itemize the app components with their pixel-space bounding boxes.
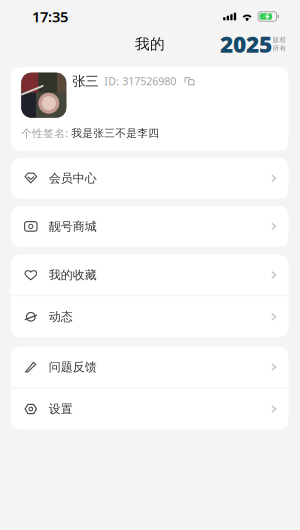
staticText: 张三 (72, 73, 98, 89)
staticText: 所有 (272, 44, 286, 52)
button[interactable]: 动态 (11, 296, 288, 337)
staticText: 设置 (49, 402, 73, 416)
staticText: 我的 (135, 35, 165, 53)
staticText: 问题反馈 (49, 360, 97, 374)
staticText: 我的收藏 (49, 267, 97, 282)
button[interactable]: 设置 (11, 388, 288, 429)
button[interactable]: 会员中心 (11, 158, 288, 199)
button[interactable]: 问题反馈 (11, 347, 288, 388)
staticText: 个性签名: (21, 126, 71, 140)
button[interactable]: 复制 ID (184, 76, 195, 86)
staticText: 我是张三不是李四 (71, 127, 159, 140)
button[interactable]: 我的收藏 (11, 254, 288, 295)
staticText: 会员中心 (49, 171, 97, 185)
staticText: ID: 317526980 (104, 74, 176, 88)
button[interactable]: 靓号商城 (11, 206, 288, 247)
staticText: 动态 (49, 309, 73, 324)
staticText: 靓号商城 (49, 219, 97, 234)
staticText: 17:35 (32, 7, 68, 26)
staticText: 2025 (220, 29, 272, 59)
staticText: 版权 (272, 36, 286, 44)
